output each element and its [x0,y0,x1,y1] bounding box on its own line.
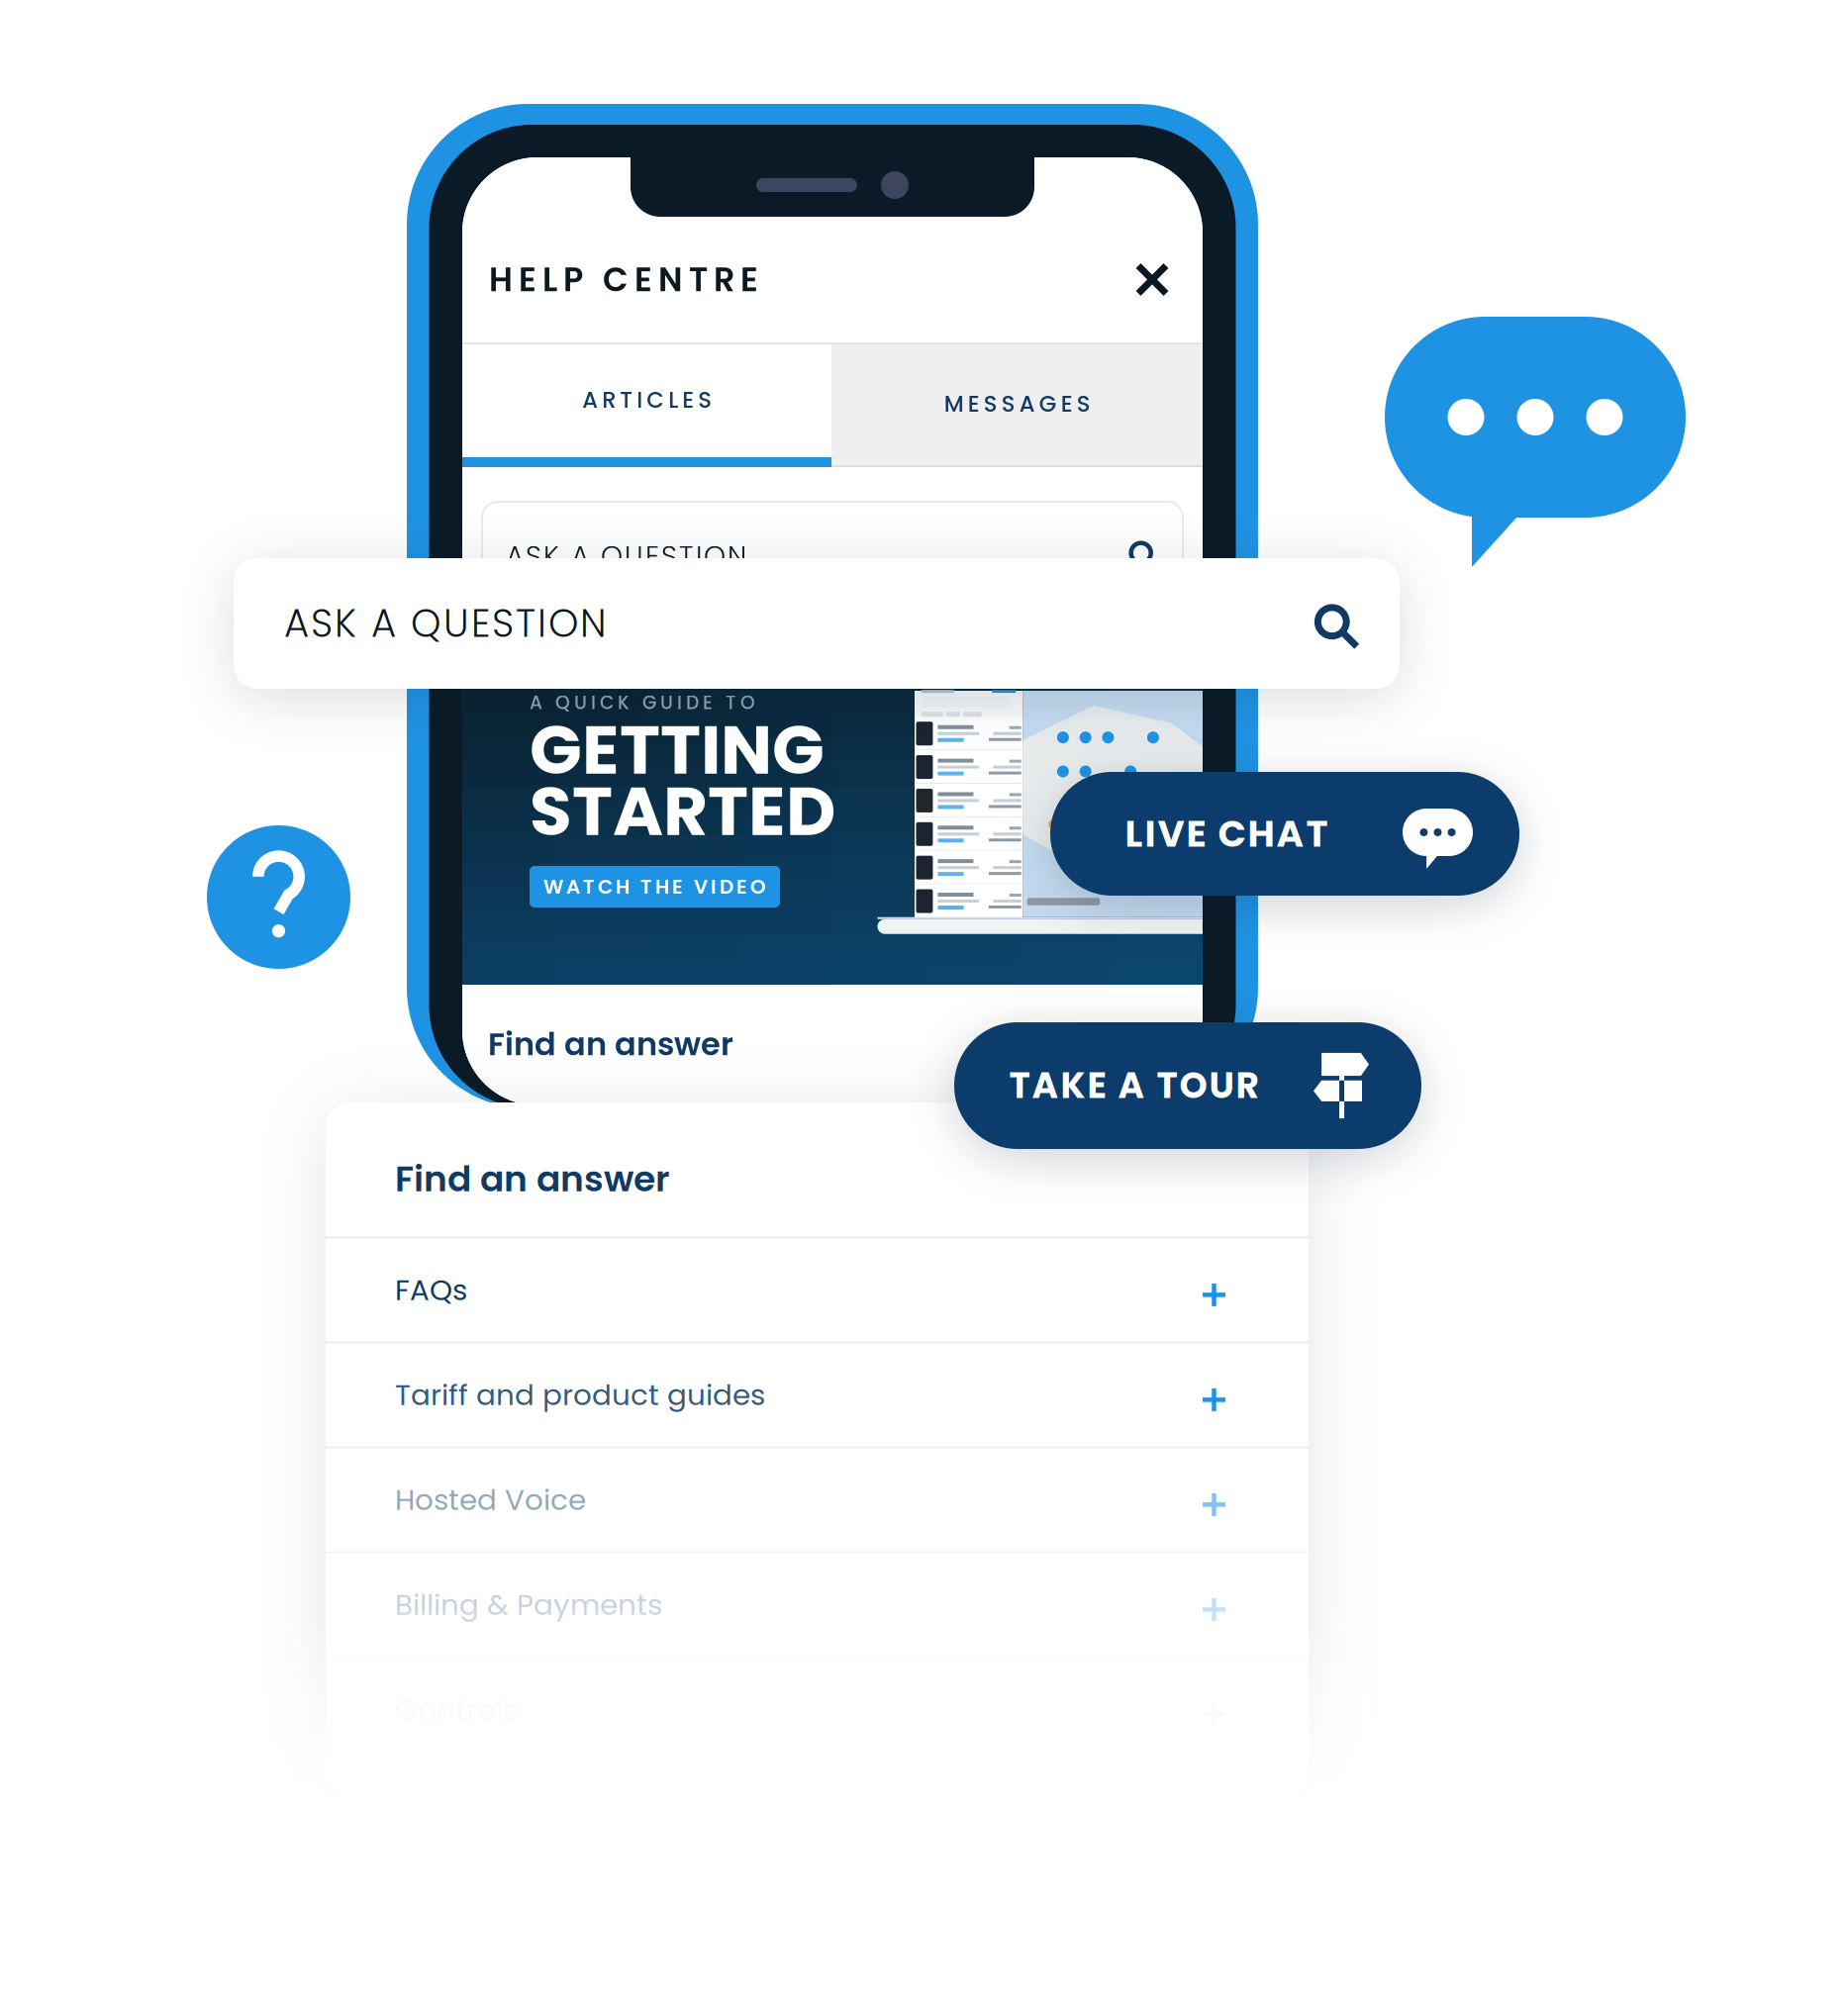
staticText: H E L P C E N T R E [489,257,758,303]
button[interactable]: A R T I C L E S [462,342,832,467]
staticText: GETTING [530,702,825,798]
button[interactable]: Hosted Voice [326,1446,1309,1551]
staticText: A R T I C L E S [582,384,712,415]
staticText: A S K A Q U E S T I O N [506,537,746,576]
staticText: Find an answer [395,1154,670,1204]
staticText: Billing & Payments [395,1584,662,1625]
button[interactable]: Close [1123,251,1181,308]
button[interactable]: Billing & Payments [326,1551,1309,1656]
staticText: Find an answer [488,1022,733,1066]
staticText: T A K E A T O U R [1009,1061,1259,1111]
button[interactable]: A S K A Q U E S T I O N [234,558,1400,689]
button[interactable]: T A K E A T O U R [954,1022,1421,1149]
staticText: A S K A Q U E S T I O N [284,597,607,650]
staticText: Tariff and product guides [395,1375,765,1415]
button[interactable]: Tariff and product guides [326,1341,1309,1446]
button[interactable]: L I V E C H A T [1050,772,1519,896]
staticText: Hosted Voice [395,1479,586,1520]
button[interactable]: W A T C H T H E V I D E O [530,866,780,908]
staticText: FAQs [395,1270,467,1310]
staticText: W A T C H T H E V I D E O [543,873,766,901]
button[interactable]: M E S S A G E S [832,342,1203,467]
staticText: M E S S A G E S [944,388,1090,419]
staticText: L I V E C H A T [1125,808,1328,860]
staticText: A Q U I C K G U I D E T O [530,690,755,716]
staticText: STARTED [530,763,835,859]
button[interactable]: FAQs [326,1236,1309,1341]
